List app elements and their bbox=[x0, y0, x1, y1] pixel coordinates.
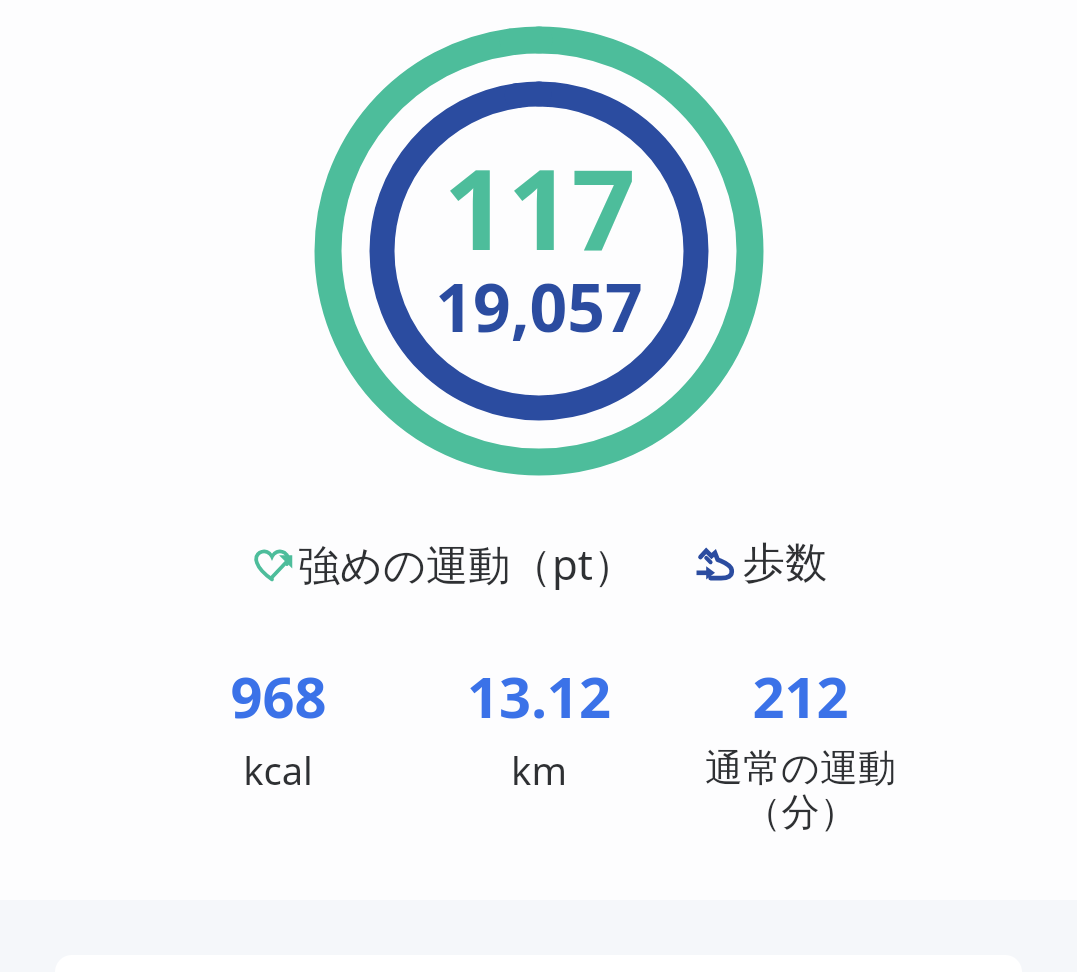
staticText: km bbox=[511, 744, 567, 796]
staticText: 968 bbox=[230, 658, 327, 734]
staticText: 19,057 bbox=[435, 261, 643, 351]
staticText: 歩数 bbox=[743, 537, 827, 590]
staticText: 212 bbox=[752, 658, 849, 734]
staticText: 13.12 bbox=[467, 658, 611, 734]
staticText: 117 bbox=[443, 130, 636, 283]
staticText: kcal bbox=[243, 744, 313, 796]
button[interactable]: 212 bbox=[650, 658, 950, 837]
button[interactable]: 968 bbox=[128, 658, 428, 796]
button[interactable]: 強めの運動（pt） bbox=[246, 531, 639, 596]
button[interactable]: 歩数 bbox=[689, 533, 831, 594]
button[interactable]: Activity rings bbox=[305, 17, 773, 485]
staticText: 強めの運動（pt） bbox=[298, 535, 635, 592]
button[interactable]: 13.12 bbox=[428, 658, 650, 796]
staticText: 通常の運動 （分） bbox=[705, 744, 896, 837]
